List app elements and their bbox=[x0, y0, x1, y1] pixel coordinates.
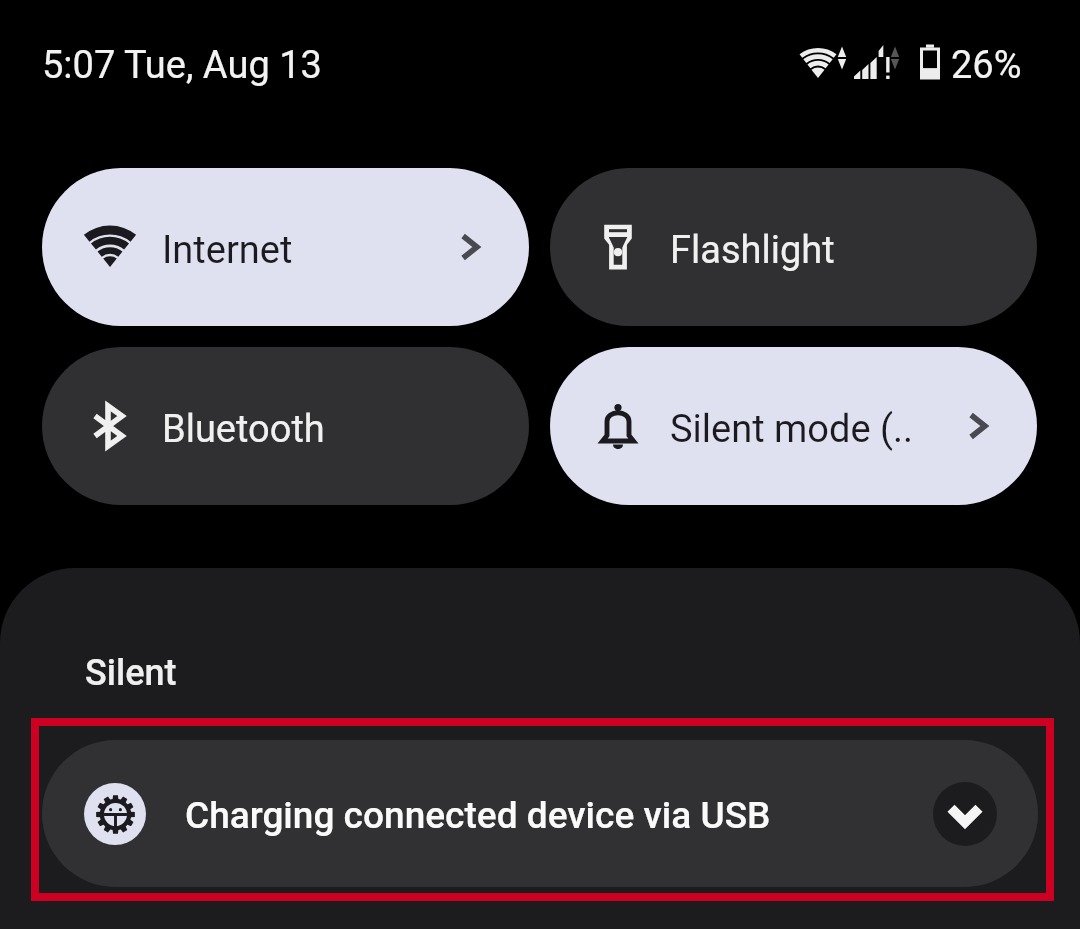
staticText: Flashlight bbox=[670, 228, 974, 273]
staticText: Bluetooth bbox=[162, 407, 466, 452]
button[interactable]: Charging connected device via USB bbox=[42, 740, 1038, 887]
button[interactable]: Internet bbox=[42, 168, 529, 326]
staticText: Internet bbox=[162, 228, 466, 273]
staticText: 5:07 Tue, Aug 13 bbox=[42, 43, 322, 88]
staticText: Silent bbox=[85, 652, 177, 694]
button[interactable]: Open Internet settings bbox=[431, 208, 509, 286]
button[interactable]: Flashlight bbox=[550, 168, 1037, 326]
staticText: 26% bbox=[951, 43, 1022, 88]
staticText: Charging connected device via USB bbox=[185, 794, 771, 837]
button[interactable]: Expand notification bbox=[933, 782, 997, 846]
staticText: Silent mode (.. bbox=[670, 407, 974, 452]
button[interactable]: Open Silent mode (.. settings bbox=[939, 387, 1017, 465]
button[interactable]: Silent mode (.. bbox=[550, 347, 1037, 505]
button[interactable]: Bluetooth bbox=[42, 347, 529, 505]
